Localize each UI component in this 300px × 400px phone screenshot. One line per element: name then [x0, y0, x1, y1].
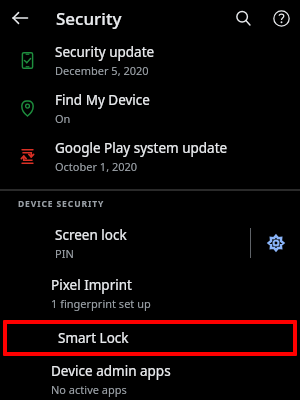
staticText: Google Play system update [55, 139, 228, 157]
button[interactable]: Smart Lock [7, 324, 293, 352]
button[interactable]: Back [0, 0, 40, 36]
staticText: Device admin apps [51, 362, 171, 380]
button[interactable]: Help [262, 0, 300, 36]
staticText: Find My Device [55, 91, 150, 109]
button[interactable]: Google Play system update [0, 132, 300, 180]
staticText: Security [56, 7, 122, 30]
button[interactable]: Search [224, 0, 262, 36]
staticText: PIN [55, 246, 74, 261]
button[interactable]: Screen lock [0, 217, 250, 269]
staticText: No active apps [51, 382, 127, 397]
staticText: October 1, 2020 [55, 159, 138, 174]
staticText: Security update [55, 43, 155, 61]
button[interactable]: Find My Device [0, 84, 300, 132]
staticText: Pixel Imprint [51, 276, 132, 294]
staticText: On [55, 111, 71, 126]
button[interactable]: Pixel Imprint [0, 269, 300, 317]
button[interactable]: Device admin apps [0, 359, 300, 400]
staticText: Screen lock [55, 226, 127, 244]
button[interactable]: Security update [0, 36, 300, 84]
button[interactable]: Screen lock settings [251, 217, 300, 269]
staticText: Smart Lock [58, 329, 129, 347]
staticText: 1 fingerprint set up [51, 296, 151, 311]
staticText: December 5, 2020 [55, 63, 149, 78]
staticText: DEVICE SECURITY [18, 198, 105, 210]
